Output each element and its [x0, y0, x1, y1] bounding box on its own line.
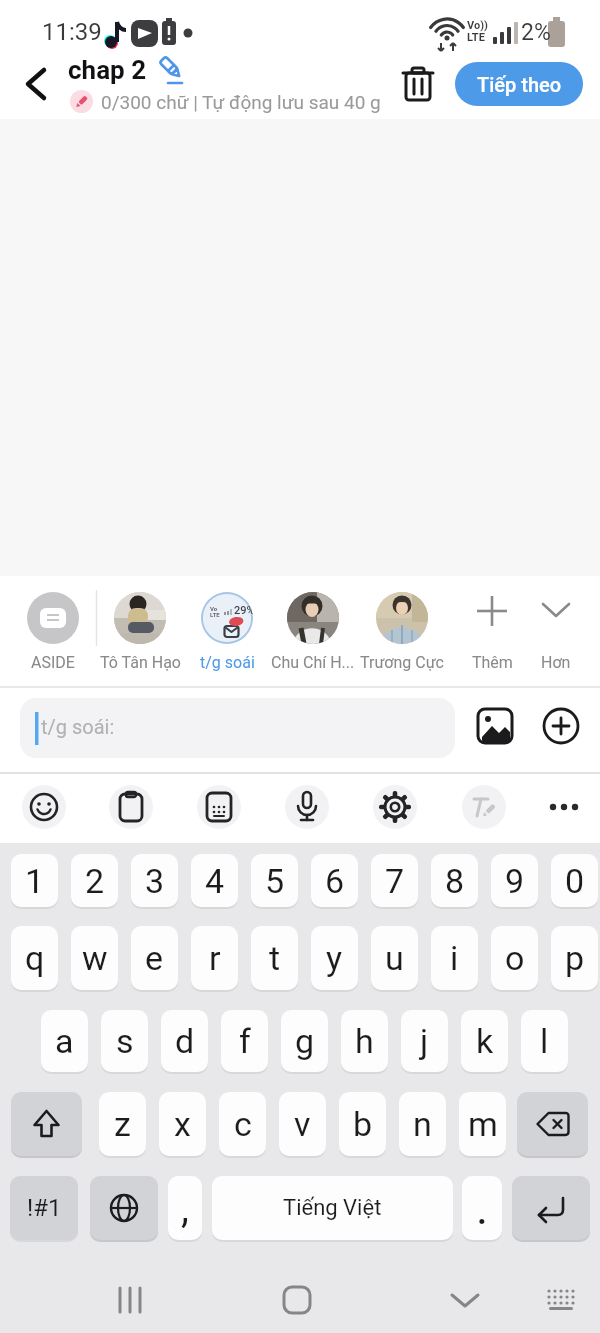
button[interactable]	[443, 1278, 487, 1322]
staticText: 0/300 chữ | Tự động lưu sau 40 g	[101, 91, 381, 113]
button[interactable]: n	[399, 1092, 446, 1156]
button[interactable]: 2	[71, 854, 118, 907]
button[interactable]: Chu Chí H...	[268, 592, 358, 672]
button[interactable]	[398, 65, 438, 105]
button[interactable]	[22, 785, 66, 829]
button[interactable]: Hơn	[511, 592, 600, 672]
staticText: 5	[265, 861, 285, 901]
staticText: t/g soái:	[41, 715, 115, 738]
button[interactable]	[275, 1278, 319, 1322]
button[interactable]: 29%	[182, 592, 272, 672]
staticText: 0	[565, 861, 585, 901]
button[interactable]: Trương Cực	[357, 592, 447, 672]
staticText: o	[505, 938, 525, 978]
staticText: g	[295, 1021, 315, 1061]
staticText: 2	[85, 861, 105, 901]
button[interactable]	[14, 62, 58, 106]
button[interactable]: w	[71, 926, 118, 990]
staticText: w	[82, 938, 108, 978]
button[interactable]: x	[159, 1092, 206, 1156]
button[interactable]	[90, 1176, 158, 1240]
button[interactable]: b	[339, 1092, 386, 1156]
button[interactable]: z	[99, 1092, 146, 1156]
button[interactable]: o	[491, 926, 538, 990]
staticText: 3	[145, 861, 165, 901]
button[interactable]	[197, 785, 241, 829]
button[interactable]: 0	[551, 854, 598, 907]
button[interactable]: 8	[431, 854, 478, 907]
button[interactable]: i	[431, 926, 478, 990]
staticText: q	[25, 938, 45, 978]
staticText: i	[450, 938, 459, 978]
button[interactable]: q	[11, 926, 58, 990]
button[interactable]: Tô Tân Hạo	[95, 592, 185, 672]
button[interactable]: l	[521, 1010, 568, 1072]
button[interactable]: v	[279, 1092, 326, 1156]
staticText: Tiếp theo	[477, 73, 562, 96]
button[interactable]: 3	[131, 854, 178, 907]
staticText: v	[294, 1104, 311, 1144]
button[interactable]: 5	[251, 854, 298, 907]
button[interactable]: Tiếng Việt	[212, 1176, 453, 1240]
button[interactable]: p	[551, 926, 598, 990]
staticText: 9	[505, 861, 525, 901]
button[interactable]: r	[191, 926, 238, 990]
button[interactable]: 7	[371, 854, 418, 907]
staticText: t/g soái	[200, 653, 255, 672]
button[interactable]: t/g soái:	[20, 698, 455, 758]
button[interactable]: h	[341, 1010, 388, 1072]
staticText: Hơn	[541, 653, 571, 672]
staticText: r	[209, 938, 221, 978]
button[interactable]	[542, 785, 586, 829]
button[interactable]: 4	[191, 854, 238, 907]
staticText: LTE	[467, 31, 485, 44]
staticText: 7	[385, 861, 405, 901]
button[interactable]	[472, 703, 518, 749]
button[interactable]	[517, 1092, 588, 1156]
button[interactable]	[538, 703, 584, 749]
button[interactable]: !#1	[10, 1176, 78, 1240]
button[interactable]	[512, 1176, 590, 1240]
button[interactable]: y	[311, 926, 358, 990]
button[interactable]: m	[459, 1092, 506, 1156]
button[interactable]: .	[462, 1176, 502, 1240]
button[interactable]	[11, 1092, 82, 1156]
staticText: s	[116, 1021, 134, 1061]
button[interactable]: e	[131, 926, 178, 990]
button[interactable]	[462, 785, 506, 829]
button[interactable]: d	[161, 1010, 208, 1072]
button[interactable]: ASIDE	[8, 592, 98, 672]
button[interactable]: Thêm	[447, 592, 537, 672]
staticText: ASIDE	[31, 653, 75, 672]
staticText: e	[145, 938, 164, 978]
button[interactable]: chap 2	[68, 52, 185, 88]
button[interactable]: t	[251, 926, 298, 990]
staticText: 6	[325, 861, 345, 901]
button[interactable]: c	[219, 1092, 266, 1156]
button[interactable]	[108, 1278, 152, 1322]
staticText: 8	[445, 861, 465, 901]
button[interactable]: j	[401, 1010, 448, 1072]
button[interactable]: 1	[11, 854, 58, 907]
button[interactable]: g	[281, 1010, 328, 1072]
button[interactable]: Tiếp theo	[455, 62, 583, 106]
staticText: Thêm	[472, 653, 513, 672]
staticText: x	[174, 1104, 191, 1144]
button[interactable]	[539, 1278, 583, 1322]
button[interactable]	[109, 785, 153, 829]
button[interactable]: f	[221, 1010, 268, 1072]
button[interactable]: ,	[168, 1176, 202, 1240]
button[interactable]: 9	[491, 854, 538, 907]
button[interactable]: u	[371, 926, 418, 990]
button[interactable]	[373, 785, 417, 829]
staticText: n	[413, 1104, 432, 1144]
button[interactable]: k	[461, 1010, 508, 1072]
staticText: u	[385, 938, 404, 978]
staticText: !#1	[27, 1194, 62, 1222]
staticText: Trương Cực	[360, 653, 444, 672]
staticText: y	[326, 938, 343, 978]
button[interactable]: 6	[311, 854, 358, 907]
button[interactable]	[285, 785, 329, 829]
button[interactable]: s	[101, 1010, 148, 1072]
button[interactable]: a	[41, 1010, 88, 1072]
